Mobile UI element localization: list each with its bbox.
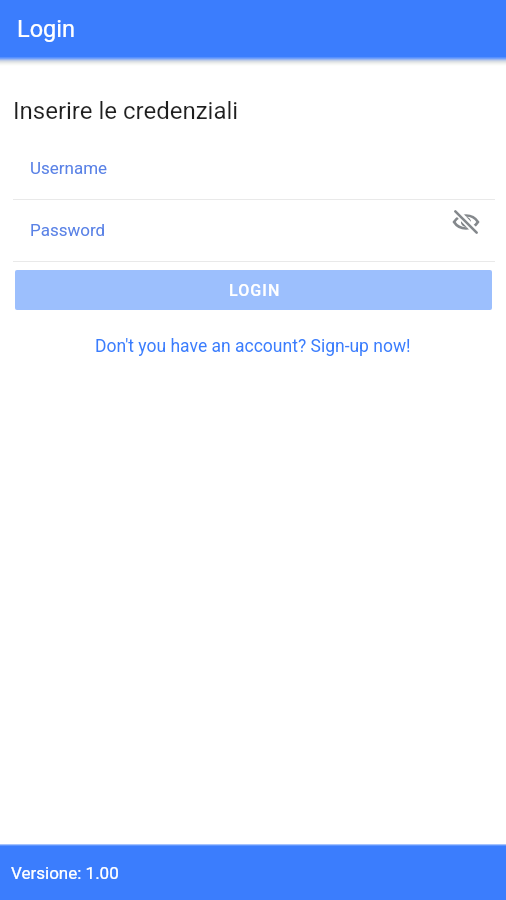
button[interactable]: Login — [0, 0, 506, 57]
staticText: Versione: 1.00 — [11, 863, 119, 883]
button[interactable]: Don't you have an account? Sign-up now! — [95, 336, 411, 357]
staticText: LOGIN — [229, 281, 281, 300]
button[interactable]: Password — [0, 215, 506, 262]
button[interactable]: Toggle password visibility — [448, 204, 484, 240]
staticText: Login — [17, 15, 75, 43]
staticText: Password — [30, 220, 106, 240]
button[interactable]: Username — [0, 153, 506, 200]
button[interactable]: Versione: 1.00 — [0, 844, 506, 900]
button[interactable]: LOGIN — [15, 270, 492, 310]
staticText: Inserire le credenziali — [13, 97, 239, 125]
staticText: Username — [30, 158, 108, 178]
